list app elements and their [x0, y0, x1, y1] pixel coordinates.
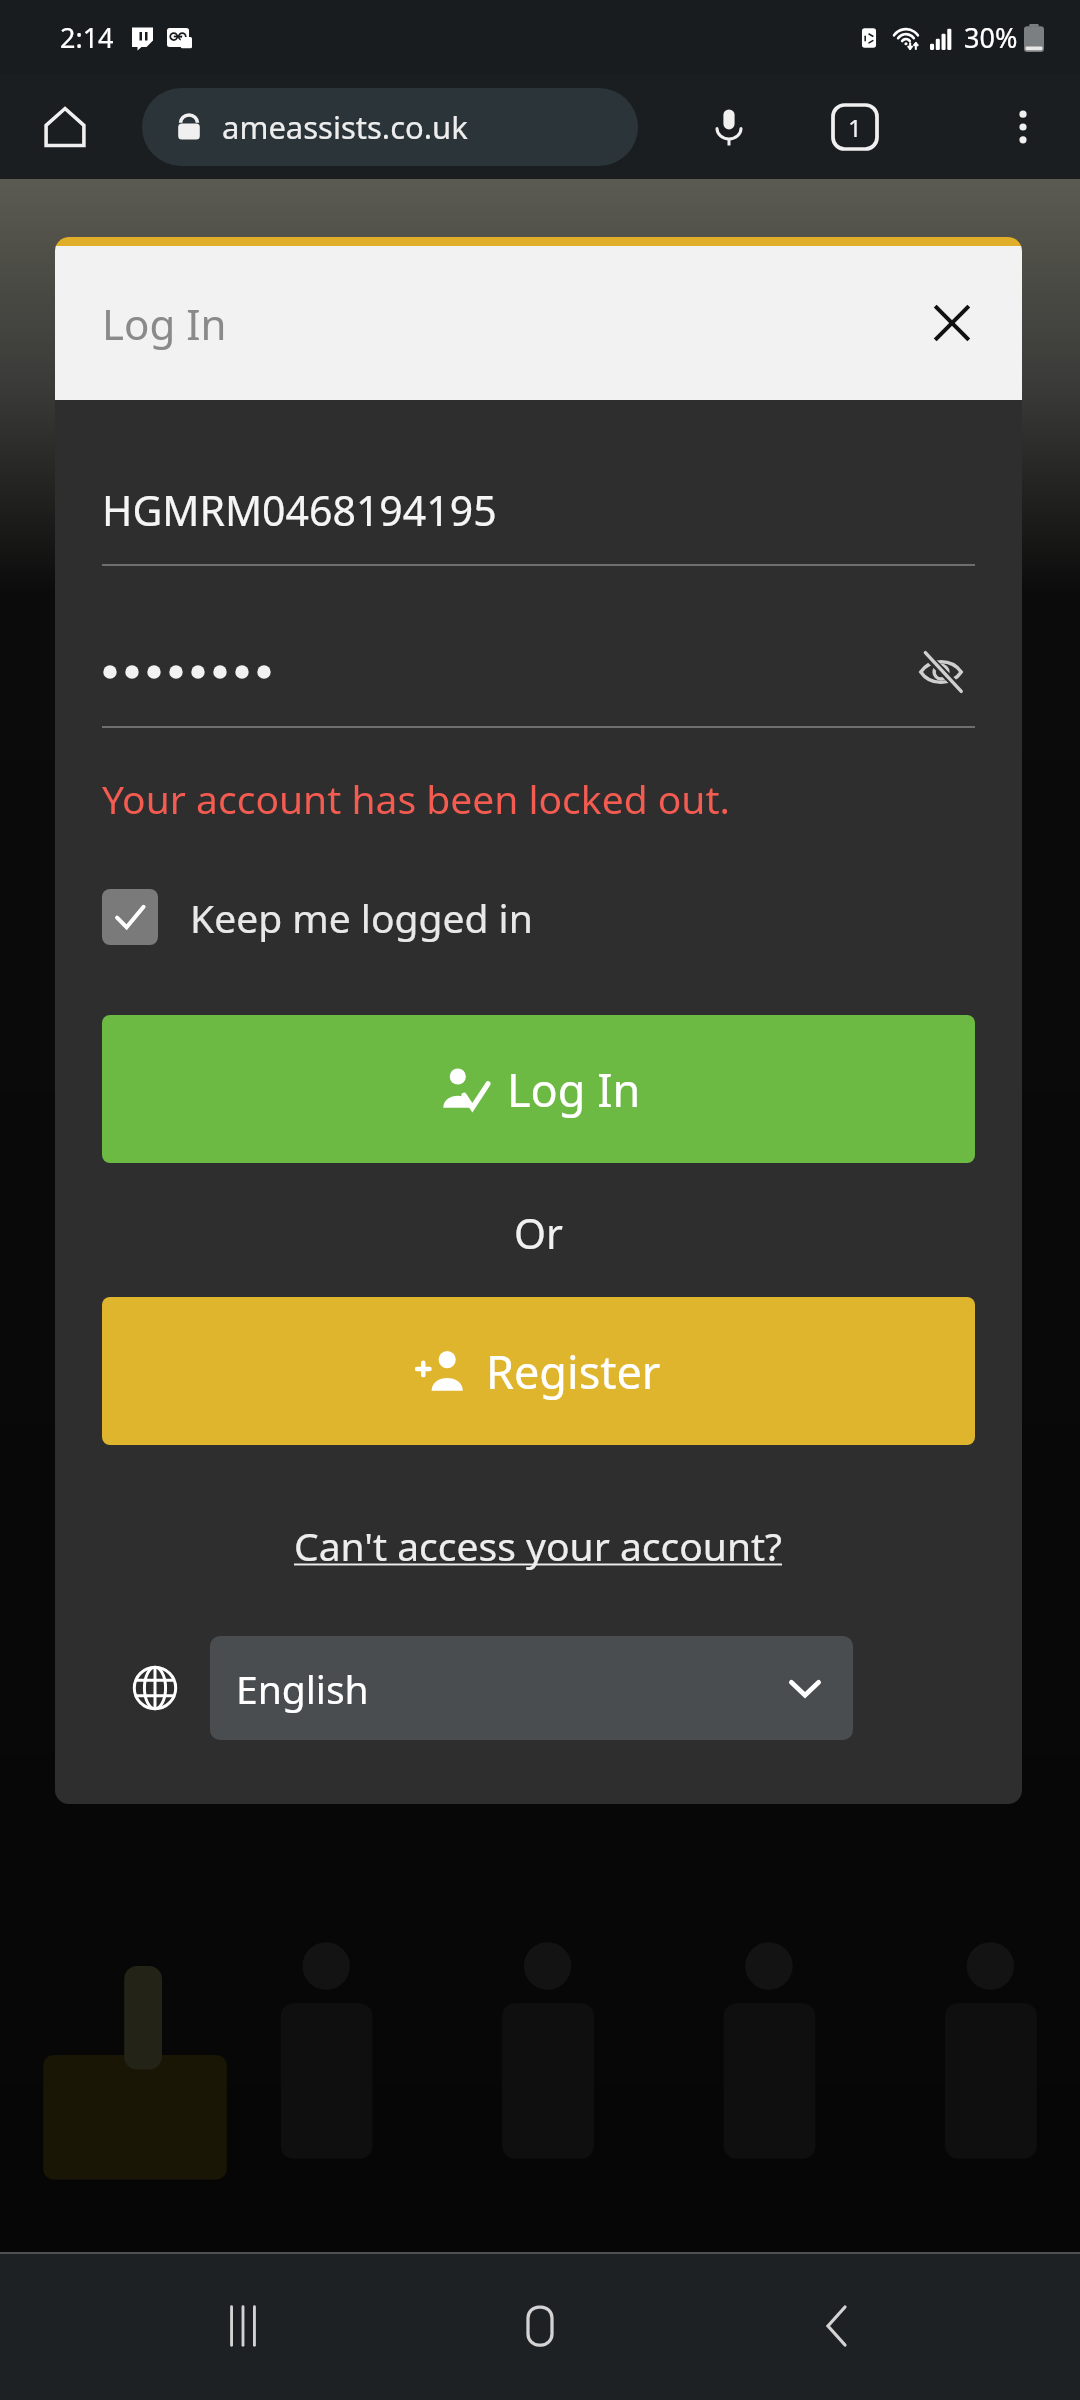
staticText: Your account has been locked out. — [102, 772, 730, 825]
staticText: 30% — [964, 19, 1018, 56]
staticText: ameassists.co.uk — [222, 106, 468, 148]
button[interactable]: HGMRM0468194195 — [102, 456, 975, 564]
button[interactable]: Back — [783, 2271, 893, 2381]
staticText: Log In — [507, 1059, 641, 1120]
staticText: English — [236, 1662, 369, 1715]
button[interactable]: Log In — [102, 1015, 975, 1163]
staticText: Register — [486, 1341, 661, 1402]
button[interactable]: Register — [102, 1297, 975, 1445]
button[interactable]: ameassists.co.uk — [142, 88, 638, 166]
staticText: 2:14 — [60, 19, 114, 56]
button[interactable]: Recents — [188, 2271, 298, 2381]
button[interactable]: Home — [485, 2271, 595, 2381]
button[interactable]: Can't access your account? — [286, 1511, 791, 1580]
staticText: HGMRM0468194195 — [102, 482, 497, 538]
button[interactable]: Home — [26, 88, 104, 166]
staticText: Log In — [102, 295, 227, 352]
staticText: 1 — [848, 111, 862, 144]
button[interactable]: Show password — [102, 618, 975, 726]
button[interactable]: Voice search — [690, 88, 768, 166]
staticText: Can't access your account? — [294, 1519, 783, 1572]
button[interactable]: Tabs, 1 open — [816, 88, 894, 166]
button[interactable]: Show password — [907, 638, 975, 706]
button[interactable]: More options — [984, 88, 1062, 166]
button[interactable]: Keep me logged in — [102, 889, 975, 945]
button[interactable]: English — [210, 1636, 853, 1740]
button[interactable]: Close — [914, 285, 990, 361]
staticText: Keep me logged in — [190, 891, 533, 944]
staticText: Or — [102, 1205, 975, 1261]
